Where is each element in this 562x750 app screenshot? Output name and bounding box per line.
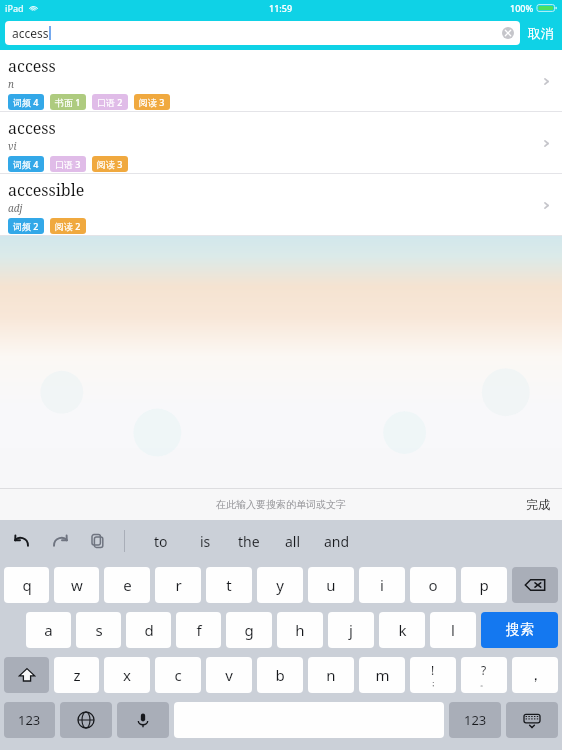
button[interactable]: o — [410, 567, 456, 603]
staticText: y — [276, 575, 284, 595]
button[interactable]: b — [257, 657, 303, 693]
button[interactable]: l — [430, 612, 476, 648]
button[interactable]: access — [0, 50, 562, 112]
button[interactable]: 123 — [449, 702, 501, 738]
staticText: 完成 — [526, 497, 550, 512]
button[interactable]: i — [359, 567, 405, 603]
staticText: 阅读 3 — [97, 158, 123, 170]
button[interactable]: 书面 1 — [50, 94, 86, 110]
button[interactable]: ? — [461, 657, 507, 693]
button[interactable]: q — [4, 567, 49, 603]
button[interactable]: g — [226, 612, 272, 648]
staticText: 书面 1 — [55, 96, 81, 108]
button[interactable]: e — [104, 567, 150, 603]
button[interactable]: r — [155, 567, 201, 603]
button[interactable]: Backspace — [512, 567, 558, 603]
staticText: 搜索 — [506, 621, 534, 639]
button[interactable]: u — [308, 567, 354, 603]
button[interactable]: 口语 3 — [50, 156, 86, 172]
staticText: z — [73, 665, 81, 685]
staticText: p — [479, 575, 489, 595]
button[interactable]: h — [277, 612, 323, 648]
button[interactable]: s — [76, 612, 121, 648]
staticText: 词频 4 — [13, 158, 39, 170]
staticText: access — [8, 117, 56, 139]
button[interactable]: access — [0, 112, 562, 174]
staticText: iPad — [5, 2, 24, 14]
staticText: accessible — [8, 179, 85, 201]
staticText: 在此输入要搜索的单词或文字 — [216, 498, 346, 511]
staticText: u — [326, 575, 336, 595]
staticText: 取消 — [528, 25, 554, 41]
button[interactable]: accessible — [0, 174, 562, 236]
button[interactable]: Hide keyboard — [506, 702, 558, 738]
staticText: s — [95, 620, 103, 640]
button[interactable]: Clear text — [502, 27, 514, 39]
button[interactable]: 阅读 3 — [92, 156, 128, 172]
button[interactable]: v — [206, 657, 252, 693]
button[interactable]: Voice input — [117, 702, 169, 738]
button[interactable]: ， — [512, 657, 558, 693]
staticText: n — [8, 77, 14, 91]
button[interactable]: 词频 2 — [8, 218, 44, 234]
staticText: 11:59 — [269, 2, 293, 14]
button[interactable]: 阅读 2 — [50, 218, 86, 234]
button[interactable]: z — [54, 657, 99, 693]
button[interactable]: and — [315, 520, 359, 562]
button[interactable]: ! — [410, 657, 456, 693]
staticText: adj — [8, 201, 23, 215]
button[interactable]: all — [271, 520, 315, 562]
button[interactable]: f — [176, 612, 221, 648]
button[interactable]: a — [26, 612, 71, 648]
staticText: n — [326, 665, 336, 685]
button[interactable]: the — [227, 520, 271, 562]
staticText: 词频 4 — [13, 96, 39, 108]
staticText: is — [200, 532, 211, 551]
button[interactable]: 搜索 — [481, 612, 558, 648]
staticText: d — [144, 620, 154, 640]
button[interactable]: to — [139, 520, 183, 562]
button[interactable]: y — [257, 567, 303, 603]
staticText: j — [349, 620, 353, 640]
button[interactable]: c — [155, 657, 201, 693]
staticText: h — [295, 620, 305, 640]
button[interactable]: 阅读 3 — [134, 94, 170, 110]
staticText: the — [238, 532, 260, 551]
button[interactable]: j — [328, 612, 374, 648]
button[interactable]: p — [461, 567, 507, 603]
button[interactable]: t — [206, 567, 252, 603]
button[interactable]: Undo — [8, 527, 36, 555]
button[interactable]: 完成 — [526, 497, 550, 512]
button[interactable]: 词频 4 — [8, 94, 44, 110]
button[interactable]: m — [359, 657, 405, 693]
staticText: 阅读 2 — [55, 220, 81, 232]
button[interactable]: 123 — [4, 702, 55, 738]
staticText: b — [275, 665, 285, 685]
button[interactable]: access — [5, 21, 520, 45]
button[interactable]: Change keyboard — [60, 702, 112, 738]
button[interactable]: Paste — [84, 527, 112, 555]
button[interactable]: n — [308, 657, 354, 693]
button[interactable]: w — [54, 567, 99, 603]
staticText: 123 — [464, 711, 487, 729]
staticText: 100% — [510, 2, 534, 14]
button[interactable]: 取消 — [528, 25, 554, 41]
button[interactable]: 词频 4 — [8, 156, 44, 172]
button[interactable]: is — [183, 520, 227, 562]
staticText: w — [71, 575, 83, 595]
staticText: and — [324, 532, 350, 551]
staticText: access — [8, 55, 56, 77]
staticText: g — [244, 620, 254, 640]
staticText: ! — [431, 662, 435, 678]
staticText: 。 — [480, 678, 488, 688]
button[interactable]: 口语 2 — [92, 94, 128, 110]
button[interactable]: x — [104, 657, 150, 693]
button[interactable]: k — [379, 612, 425, 648]
staticText: f — [196, 620, 202, 640]
button[interactable]: Redo — [46, 527, 74, 555]
button[interactable]: Shift — [4, 657, 49, 693]
staticText: e — [123, 575, 132, 595]
button[interactable]: d — [126, 612, 171, 648]
staticText: l — [451, 620, 455, 640]
